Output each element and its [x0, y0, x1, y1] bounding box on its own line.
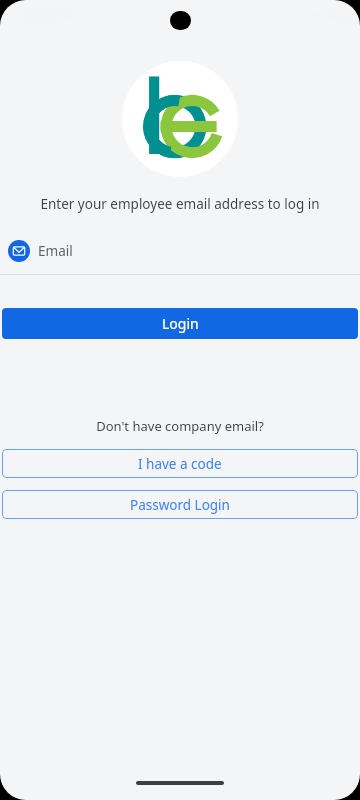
- staticText: Don't have company email?: [0, 417, 360, 435]
- button[interactable]: Login: [2, 308, 358, 339]
- button[interactable]: Email: [0, 233, 360, 269]
- button[interactable]: I have a code: [2, 449, 358, 478]
- staticText: Login: [162, 314, 199, 333]
- other: Email: [8, 240, 30, 262]
- staticText: Password Login: [130, 496, 230, 514]
- staticText: I have a code: [138, 455, 222, 473]
- staticText: Enter your employee email address to log…: [0, 195, 360, 213]
- staticText: Email: [38, 242, 73, 260]
- button[interactable]: Password Login: [2, 490, 358, 519]
